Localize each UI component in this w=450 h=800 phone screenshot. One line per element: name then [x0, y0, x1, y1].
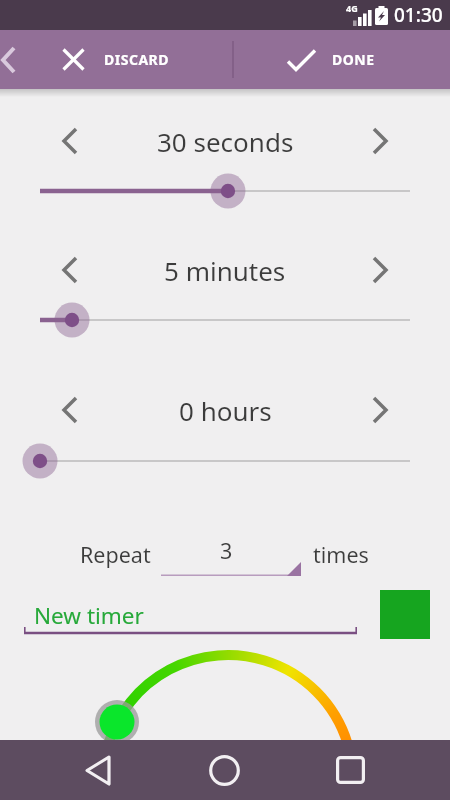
staticText: 5 minutes [164, 253, 286, 288]
staticText: DONE [332, 50, 375, 69]
button[interactable]: 3 [161, 529, 301, 577]
staticText: 0 hours [179, 393, 272, 428]
button[interactable] [358, 386, 402, 434]
staticText: 4G [346, 2, 358, 14]
button[interactable]: DONE [234, 30, 450, 89]
button[interactable] [53, 747, 143, 793]
button[interactable] [358, 246, 402, 294]
staticText: DISCARD [104, 50, 170, 69]
staticText: New timer [34, 600, 144, 631]
button[interactable] [305, 747, 395, 793]
button[interactable] [0, 171, 450, 211]
button[interactable] [48, 117, 92, 165]
button[interactable] [48, 386, 92, 434]
button[interactable]: New timer [34, 598, 144, 632]
button[interactable]: DISCARD [0, 30, 232, 89]
button[interactable] [179, 747, 269, 793]
button[interactable] [48, 246, 92, 294]
button[interactable] [0, 441, 450, 481]
staticText: 3 [220, 536, 233, 565]
button[interactable] [358, 117, 402, 165]
staticText: 30 seconds [157, 124, 294, 159]
staticText: Repeat [80, 540, 151, 569]
staticText: times [313, 540, 369, 569]
button[interactable] [0, 300, 450, 340]
staticText: 01:30 [394, 2, 443, 28]
